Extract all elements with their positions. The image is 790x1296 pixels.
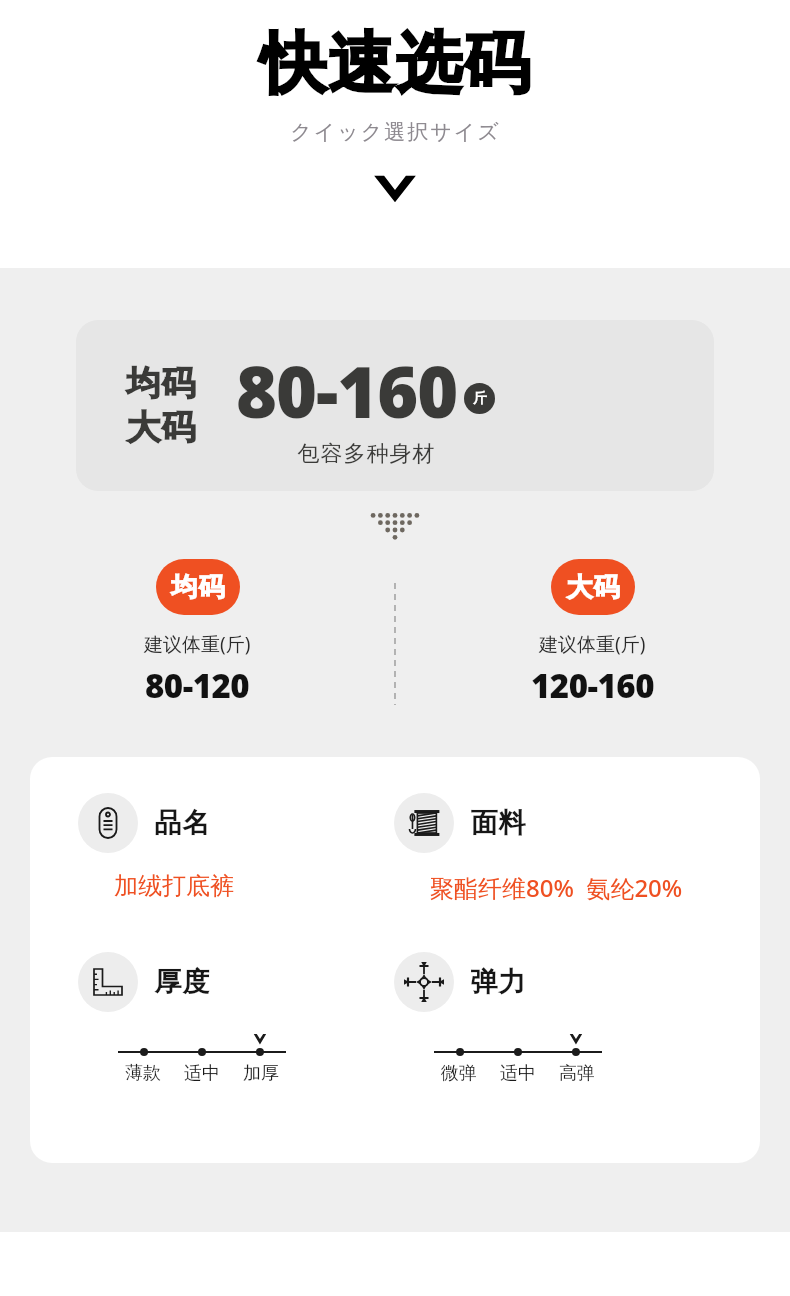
staticText: 80-160 <box>236 343 458 438</box>
staticText: 建议体重(斤) <box>144 631 251 657</box>
staticText: 面料 <box>470 806 526 840</box>
button[interactable]: Fabric <box>394 793 760 904</box>
staticText: 120-160 <box>531 663 655 708</box>
button[interactable]: 均码 大码 <box>76 320 714 491</box>
staticText: 适中 <box>184 1062 220 1085</box>
staticText: 品名 <box>154 806 210 840</box>
button[interactable]: 大码 <box>395 559 790 708</box>
staticText: クイック選択サイズ <box>290 119 501 145</box>
button[interactable]: 均码 <box>0 559 395 708</box>
staticText: 弹力 <box>470 965 526 999</box>
other: Product name <box>91 806 125 840</box>
staticText: 高弹 <box>559 1062 595 1085</box>
staticText: 包容多种身材 <box>297 440 435 468</box>
staticText: 薄款 <box>125 1062 161 1085</box>
other: Fabric <box>406 805 442 841</box>
staticText: 80-120 <box>145 663 250 708</box>
button[interactable]: Thickness <box>78 952 394 1085</box>
staticText: 大码 <box>566 571 620 604</box>
other: Thickness <box>91 965 125 999</box>
button[interactable]: Elasticity <box>394 952 760 1085</box>
other: Elasticity <box>406 964 442 1000</box>
staticText: 均码 <box>171 571 225 604</box>
staticText: 聚酯纤维80% 氨纶20% <box>430 871 683 904</box>
staticText: 快速选码 <box>259 22 531 105</box>
staticText: 建议体重(斤) <box>539 631 646 657</box>
staticText: 微弹 <box>441 1062 477 1085</box>
staticText: 加厚 <box>243 1062 279 1085</box>
staticText: 均码 大码 <box>126 362 196 449</box>
button[interactable]: Product name <box>78 793 394 901</box>
staticText: 适中 <box>500 1062 536 1085</box>
staticText: 厚度 <box>154 965 210 999</box>
staticText: 加绒打底裤 <box>114 871 234 901</box>
staticText: 斤 <box>473 390 487 408</box>
